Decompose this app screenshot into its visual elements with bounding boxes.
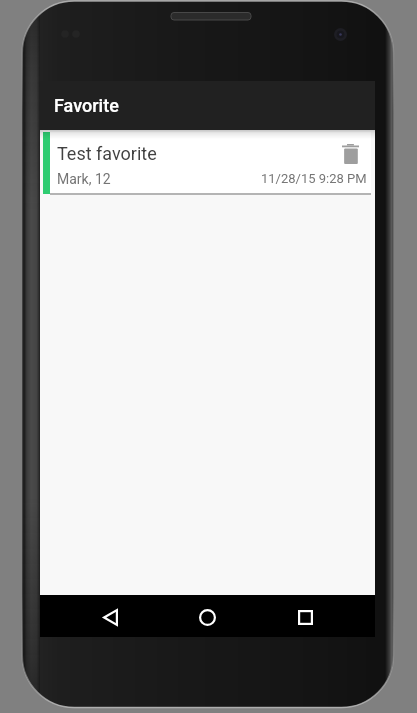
- button[interactable]: Test favorite: [43, 132, 371, 194]
- button[interactable]: Back: [84, 601, 136, 633]
- staticText: Favorite: [54, 95, 119, 116]
- button[interactable]: Delete: [342, 144, 359, 164]
- button[interactable]: Home: [181, 601, 233, 633]
- button[interactable]: Favorite: [40, 81, 375, 130]
- staticText: Mark, 12: [57, 171, 111, 187]
- staticText: Test favorite: [57, 143, 157, 164]
- button[interactable]: Recents: [279, 601, 331, 633]
- staticText: 11/28/15 9:28 PM: [261, 171, 367, 186]
